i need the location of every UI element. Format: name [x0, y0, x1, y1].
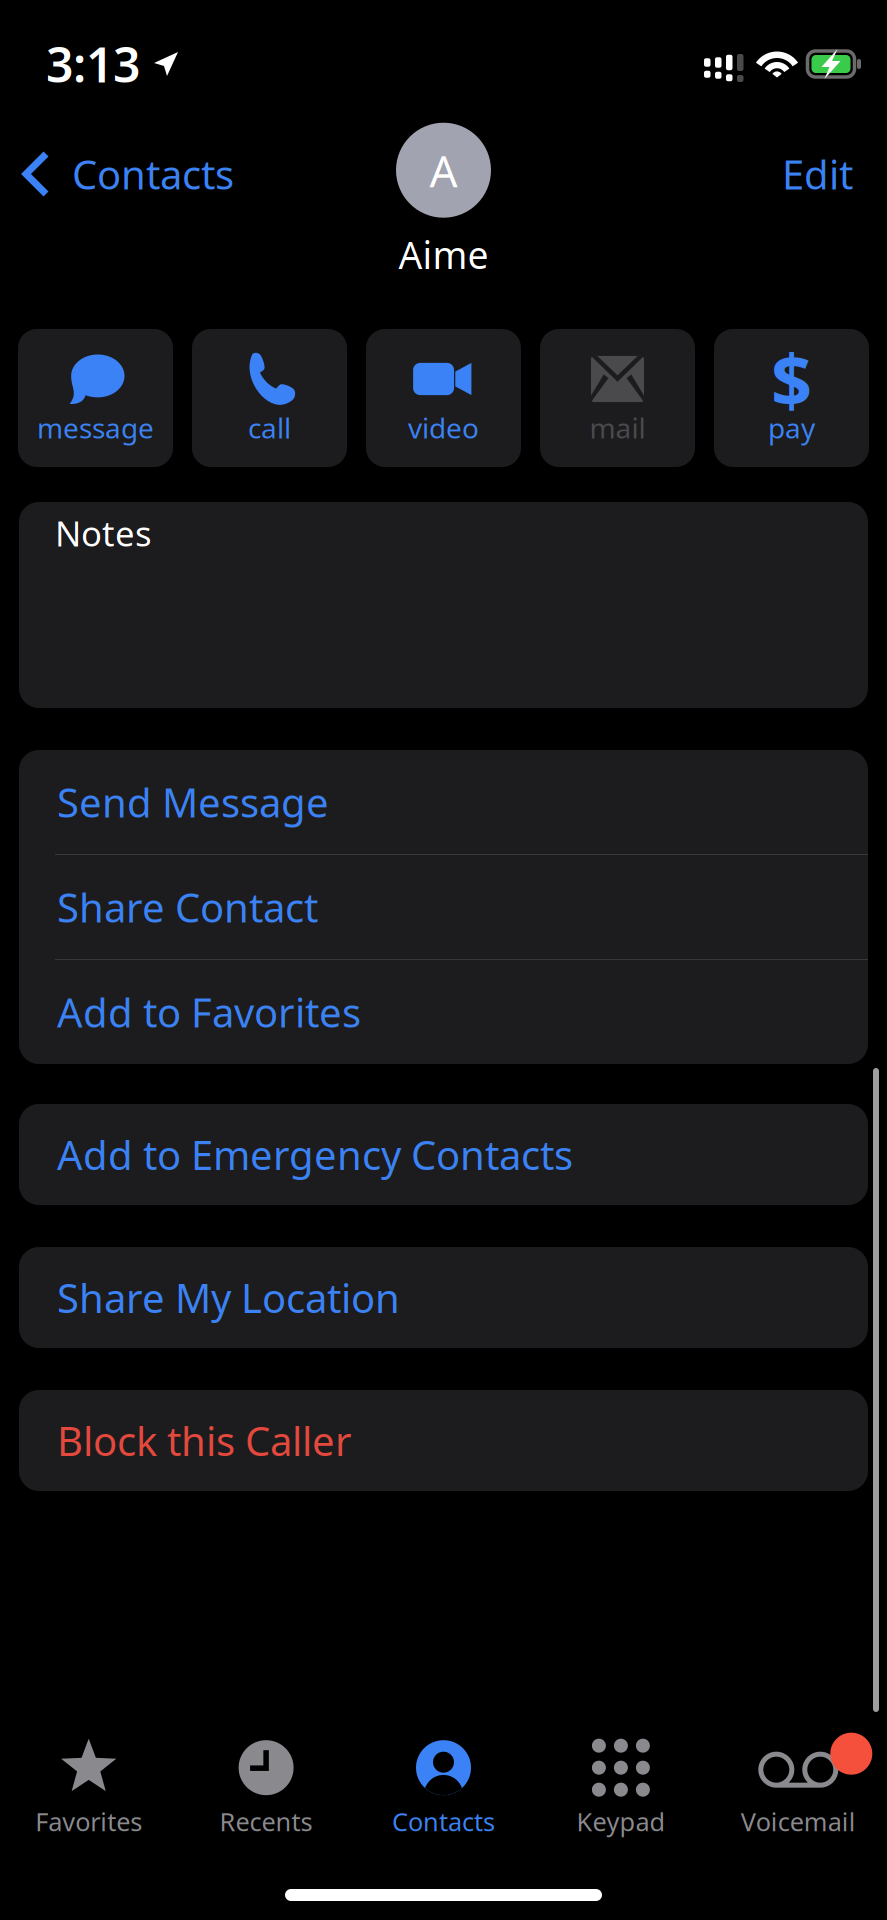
staticText: Add to Emergency Contacts [57, 1128, 573, 1181]
staticText: Share My Location [57, 1271, 400, 1324]
button[interactable]: Edit [782, 139, 887, 209]
button[interactable]: Share My Location [19, 1247, 868, 1348]
staticText: Send Message [57, 775, 329, 828]
button[interactable]: mail [540, 329, 695, 467]
staticText: Contacts [72, 147, 234, 200]
button[interactable]: Add to Emergency Contacts [19, 1104, 868, 1205]
staticText: Favorites [35, 1805, 142, 1838]
staticText: Voicemail [741, 1805, 856, 1838]
staticText: Notes [55, 510, 152, 556]
staticText: video [408, 409, 479, 446]
staticText: Recents [220, 1805, 313, 1838]
staticText: $ [771, 331, 812, 427]
staticText: pay [768, 409, 815, 446]
button[interactable]: Contacts [0, 139, 234, 209]
staticText: Edit [782, 147, 853, 200]
staticText: Contacts [392, 1805, 495, 1838]
staticText: Keypad [576, 1805, 665, 1838]
button[interactable]: Contacts [355, 1740, 532, 1838]
button[interactable]: message [18, 329, 173, 467]
button[interactable]: $ [714, 329, 869, 467]
button[interactable]: Share Contact [19, 855, 868, 959]
staticText: Block this Caller [57, 1414, 352, 1467]
button[interactable]: Recents [177, 1740, 355, 1838]
button[interactable]: video [366, 329, 521, 467]
button[interactable]: Keypad [532, 1740, 710, 1838]
staticText: Aime [398, 230, 488, 279]
staticText: Add to Favorites [57, 985, 361, 1038]
button[interactable]: Block this Caller [19, 1390, 868, 1491]
button[interactable]: Voicemail [710, 1740, 887, 1838]
button[interactable]: Send Message [19, 750, 868, 854]
staticText: 3:13 [46, 32, 140, 96]
staticText: call [248, 409, 291, 446]
staticText: A [429, 141, 457, 199]
staticText: mail [589, 409, 645, 446]
button[interactable]: Add to Favorites [19, 960, 868, 1064]
staticText: message [37, 409, 154, 446]
staticText: Share Contact [57, 880, 318, 933]
button[interactable]: Favorites [0, 1740, 177, 1838]
button[interactable]: call [192, 329, 347, 467]
